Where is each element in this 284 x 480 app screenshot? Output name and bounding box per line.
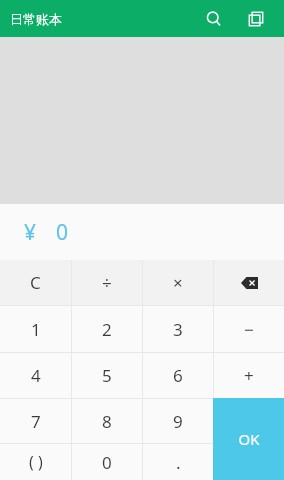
button[interactable]: 4 — [0, 353, 71, 398]
button[interactable]: 9 — [143, 399, 213, 443]
button[interactable]: C — [0, 260, 71, 305]
button[interactable]: ÷ — [72, 260, 142, 305]
button[interactable]: Backspace — [214, 260, 284, 305]
staticText: 6 — [173, 364, 183, 387]
button[interactable]: 3 — [143, 306, 213, 352]
staticText: 2 — [102, 318, 112, 341]
staticText: 9 — [173, 410, 183, 433]
staticText: . — [176, 451, 181, 474]
staticText: 8 — [102, 410, 112, 433]
button[interactable]: 5 — [72, 353, 142, 398]
button[interactable]: 2 — [72, 306, 142, 352]
staticText: 3 — [173, 318, 183, 341]
button[interactable]: Search — [198, 3, 230, 35]
button[interactable]: 0 — [72, 444, 142, 480]
staticText: 0 — [102, 451, 112, 474]
button[interactable]: × — [143, 260, 213, 305]
button[interactable]: . — [143, 444, 213, 480]
staticText: ( ) — [29, 451, 43, 473]
button[interactable]: 7 — [0, 399, 71, 443]
button[interactable]: − — [214, 306, 284, 352]
staticText: 1 — [31, 318, 41, 341]
staticText: OK — [238, 429, 260, 449]
staticText: − — [244, 318, 254, 341]
staticText: C — [30, 271, 41, 294]
staticText: ¥ — [24, 218, 37, 247]
button[interactable]: 8 — [72, 399, 142, 443]
button[interactable]: 6 — [143, 353, 213, 398]
button[interactable]: Tabs — [240, 3, 272, 35]
button[interactable]: + — [214, 353, 284, 398]
staticText: 0 — [56, 218, 69, 247]
staticText: × — [173, 271, 183, 294]
staticText: ÷ — [102, 271, 112, 294]
button[interactable]: ( ) — [0, 444, 71, 480]
staticText: + — [244, 364, 254, 387]
button[interactable]: 1 — [0, 306, 71, 352]
staticText: 4 — [31, 364, 41, 387]
staticText: 5 — [102, 364, 112, 387]
staticText: 日常账本 — [10, 11, 62, 27]
staticText: 7 — [31, 410, 41, 433]
button[interactable]: ¥ — [0, 204, 284, 260]
button[interactable]: OK — [213, 398, 284, 480]
